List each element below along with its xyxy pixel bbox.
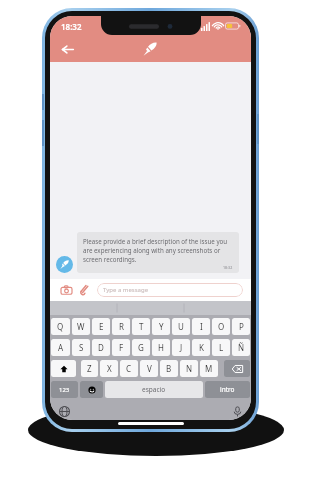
staticText: F: [119, 342, 124, 353]
button[interactable]: Attach file: [77, 282, 93, 298]
staticText: Please provide a brief description of th…: [83, 237, 233, 264]
button[interactable]: Ñ: [232, 339, 250, 356]
button[interactable]: U: [172, 318, 190, 335]
staticText: X: [107, 363, 112, 374]
button[interactable]: Z: [81, 360, 98, 377]
button[interactable]: Please provide a brief description of th…: [77, 232, 239, 273]
button[interactable]: Y: [152, 318, 170, 335]
staticText: U: [178, 321, 184, 332]
staticText: espacio: [142, 385, 166, 394]
button[interactable]: E: [92, 318, 110, 335]
button[interactable]: K: [192, 339, 210, 356]
staticText: Q: [57, 321, 64, 332]
button[interactable]: G: [132, 339, 150, 356]
button[interactable]: 123: [51, 381, 78, 398]
button[interactable]: T: [132, 318, 150, 335]
button[interactable]: C: [120, 360, 138, 377]
button[interactable]: V: [140, 360, 158, 377]
button[interactable]: L: [212, 339, 230, 356]
button[interactable]: Change language: [56, 403, 72, 419]
staticText: K: [199, 342, 204, 353]
button[interactable]: Q: [51, 318, 70, 335]
button[interactable]: Back: [50, 36, 84, 62]
button[interactable]: Backspace: [224, 360, 250, 377]
button[interactable]: espacio: [105, 381, 203, 398]
button[interactable]: Shift: [51, 360, 76, 377]
staticText: C: [126, 363, 132, 374]
button[interactable]: R: [112, 318, 130, 335]
button[interactable]: J: [172, 339, 190, 356]
staticText: J: [180, 342, 183, 353]
staticText: W: [77, 321, 85, 332]
button[interactable]: intro: [205, 381, 250, 398]
button[interactable]: B: [160, 360, 178, 377]
button[interactable]: I: [192, 318, 210, 335]
button[interactable]: M: [200, 360, 218, 377]
staticText: V: [147, 363, 152, 374]
staticText: G: [138, 342, 144, 353]
staticText: D: [98, 342, 104, 353]
staticText: S: [79, 342, 84, 353]
staticText: Ñ: [238, 342, 245, 353]
button[interactable]: D: [92, 339, 110, 356]
staticText: I: [200, 321, 203, 332]
button[interactable]: Type a message: [97, 283, 243, 297]
staticText: T: [139, 321, 144, 332]
staticText: N: [186, 363, 193, 374]
button[interactable]: W: [72, 318, 90, 335]
button[interactable]: Emoji: [80, 381, 103, 398]
staticText: B: [166, 363, 172, 374]
staticText: E: [99, 321, 104, 332]
button[interactable]: App logo: [137, 36, 163, 62]
staticText: 18:32: [223, 265, 233, 270]
button[interactable]: X: [100, 360, 118, 377]
staticText: L: [219, 342, 224, 353]
staticText: H: [158, 342, 164, 353]
staticText: M: [205, 363, 213, 374]
staticText: intro: [220, 385, 235, 394]
staticText: R: [119, 321, 124, 332]
button[interactable]: O: [212, 318, 230, 335]
staticText: 18:32: [61, 21, 82, 32]
staticText: Y: [159, 321, 164, 332]
staticText: Z: [87, 363, 92, 374]
button[interactable]: P: [232, 318, 250, 335]
button[interactable]: Camera: [58, 282, 74, 298]
button[interactable]: N: [180, 360, 198, 377]
staticText: Type a message: [103, 286, 149, 294]
button[interactable]: S: [72, 339, 90, 356]
button[interactable]: Voice input: [229, 403, 245, 419]
staticText: A: [58, 342, 64, 353]
staticText: P: [239, 321, 244, 332]
button[interactable]: A: [51, 339, 70, 356]
button[interactable]: F: [112, 339, 130, 356]
staticText: O: [218, 321, 225, 332]
staticText: 123: [59, 386, 70, 394]
button[interactable]: H: [152, 339, 170, 356]
